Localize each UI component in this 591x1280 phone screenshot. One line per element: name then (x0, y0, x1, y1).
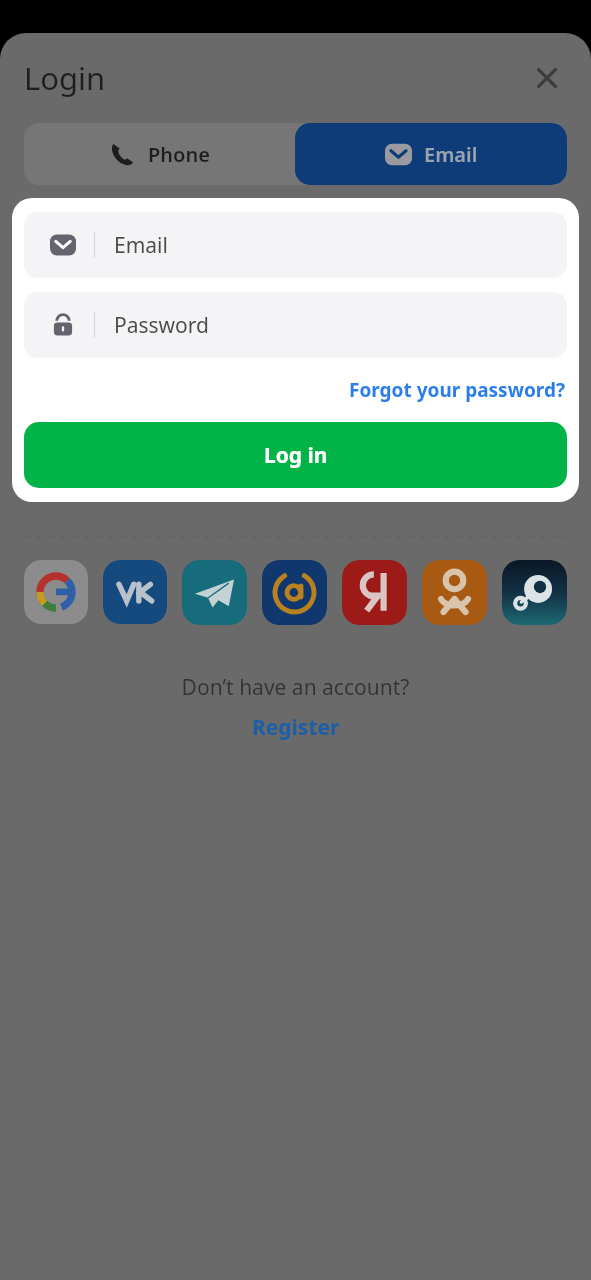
button[interactable]: Sign in with Telegram (182, 560, 247, 625)
button[interactable]: Password (24, 292, 567, 358)
button[interactable]: Register (246, 711, 346, 744)
staticText: Login (24, 57, 106, 99)
staticText: Don’t have an account? (0, 673, 591, 702)
button[interactable]: Phone (24, 123, 295, 185)
staticText: Password (114, 311, 209, 340)
button[interactable]: Sign in with Odnoklassniki (422, 560, 487, 625)
button[interactable]: Sign in with Steam (502, 560, 567, 625)
button[interactable]: Close (527, 58, 567, 98)
button[interactable]: Sign in with Mail.ru (262, 560, 327, 625)
button[interactable]: Email (295, 123, 567, 185)
button[interactable]: Sign in with Yandex (342, 560, 407, 625)
button[interactable]: Sign in with VK (103, 560, 167, 624)
button[interactable]: Log in (24, 422, 567, 488)
staticText: Email (114, 231, 168, 260)
staticText: Phone (148, 141, 210, 168)
button[interactable]: Email (24, 212, 567, 278)
button[interactable]: Forgot your password? (347, 374, 567, 406)
staticText: Log in (264, 441, 328, 470)
button[interactable]: Sign in with Google (24, 560, 88, 624)
staticText: Email (424, 141, 478, 168)
staticText: Forgot your password? (349, 377, 565, 403)
staticText: Register (252, 713, 340, 742)
